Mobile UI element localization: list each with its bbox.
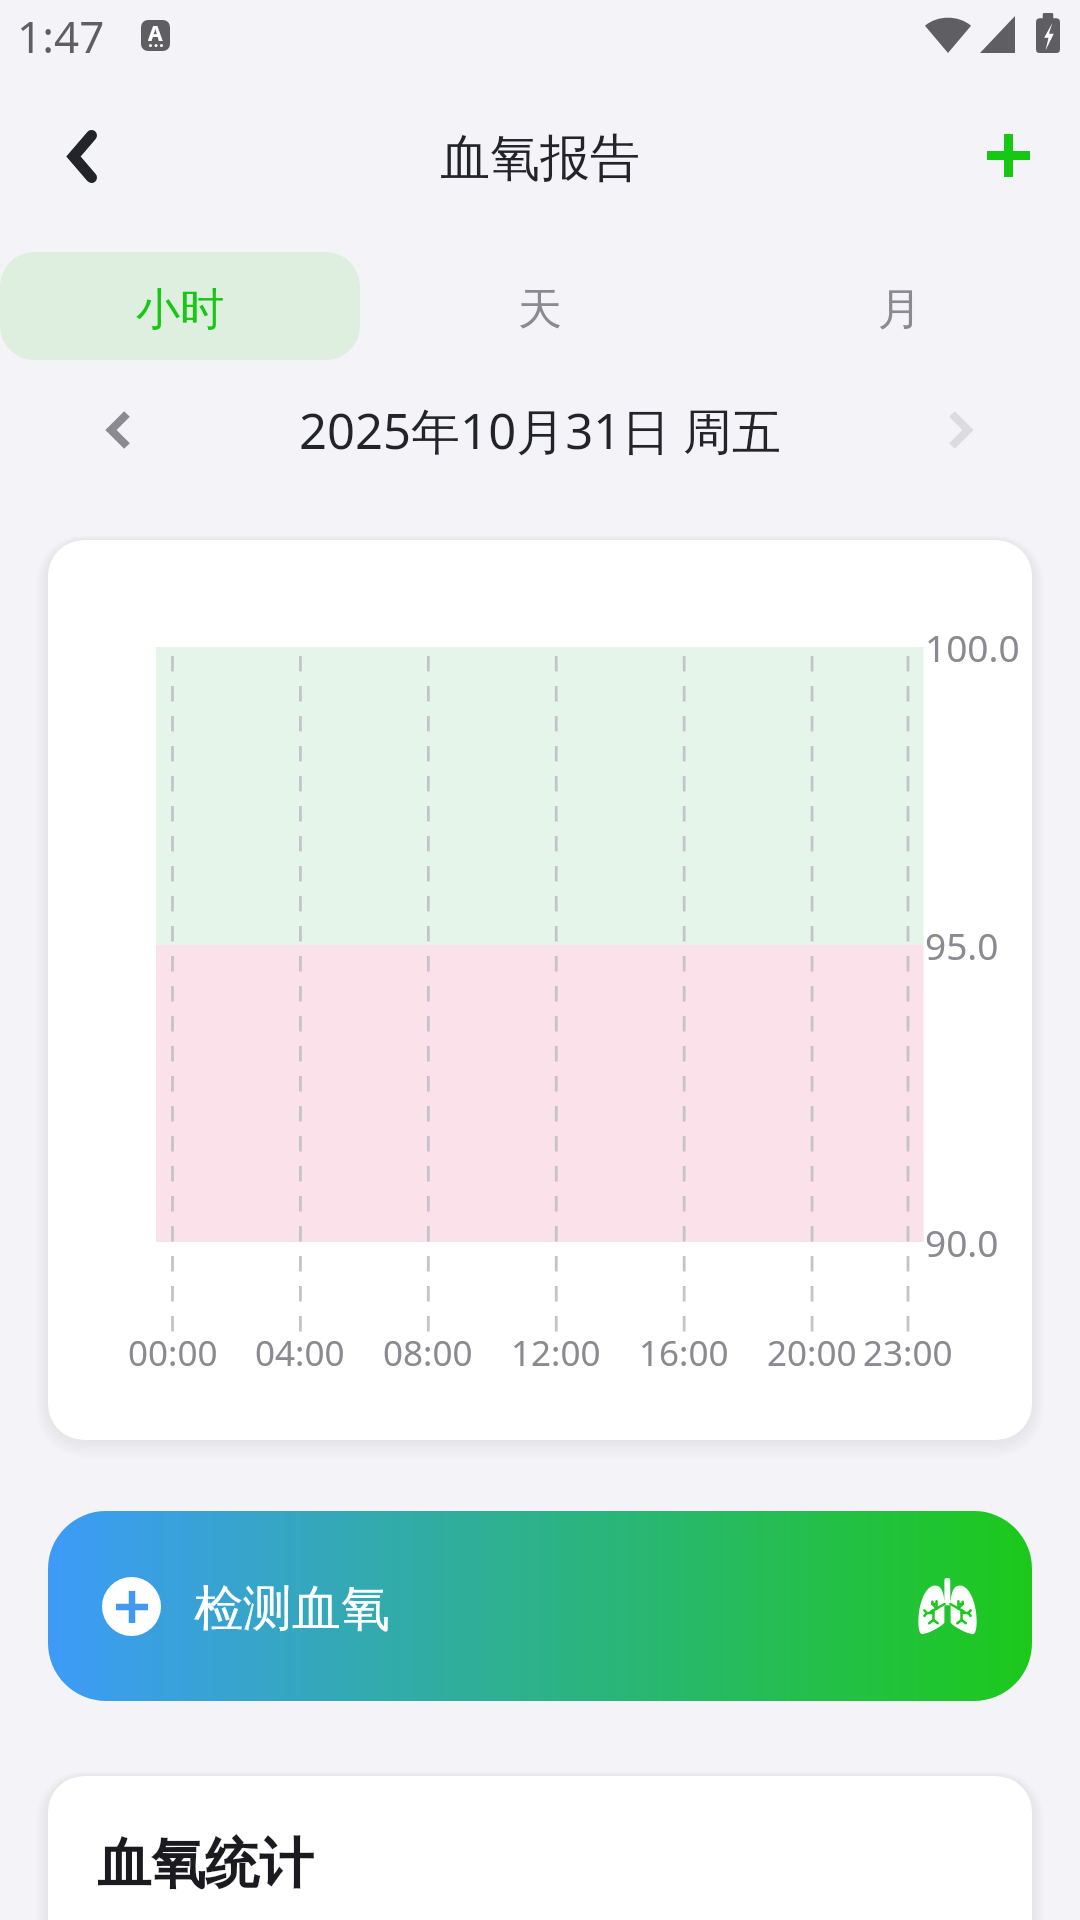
staticText: 100.0 [925,622,1020,672]
staticText: 95.0 [925,920,999,970]
staticText: 00:00 [128,1329,218,1377]
staticText: 1:47 [17,6,105,66]
staticText: 血氧报告 [440,127,640,190]
button[interactable]: Next day [912,382,1008,478]
staticText: 16:00 [639,1329,729,1377]
staticText: 月 [878,282,922,337]
button[interactable]: Previous day [71,382,167,478]
button[interactable]: 小时 [0,252,360,360]
staticText: 08:00 [383,1329,473,1377]
button[interactable]: 天 [360,252,720,360]
staticText: 血氧统计 [97,1830,313,1898]
button[interactable]: Add [954,101,1062,209]
staticText: 2025年10月31日 周五 [299,397,781,464]
staticText: 小时 [136,282,224,337]
staticText: 天 [518,282,562,337]
staticText: 检测血氧 [194,1578,390,1640]
staticText: 20:00 [767,1329,857,1377]
staticText: A [148,20,163,48]
button[interactable]: 月 [720,252,1080,360]
staticText: 90.0 [925,1217,999,1267]
button[interactable]: 检测血氧 [48,1511,1032,1701]
staticText: 04:00 [255,1329,345,1377]
staticText: 23:00 [863,1329,953,1377]
staticText: 12:00 [511,1329,601,1377]
button[interactable]: Back [28,102,136,210]
